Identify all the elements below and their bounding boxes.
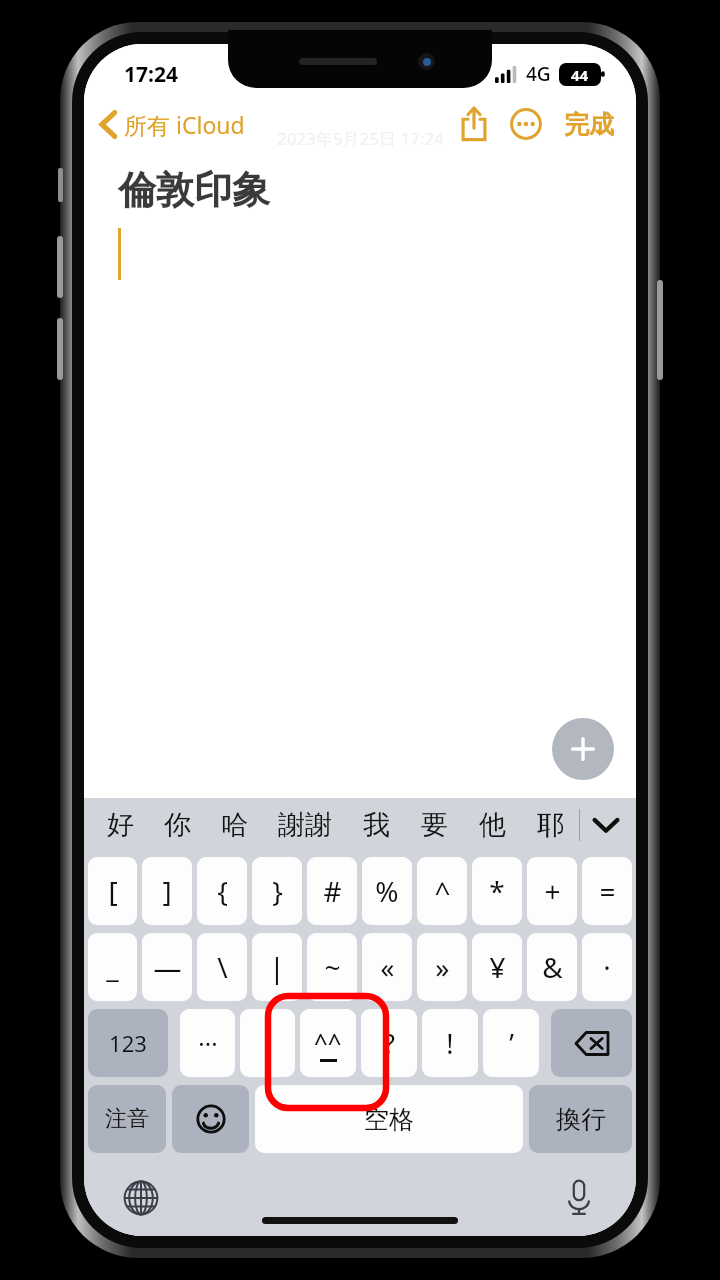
staticText: 完成 (564, 109, 614, 140)
button[interactable]: ’ (483, 1009, 539, 1077)
staticText: 2023年5月25日 17:24 (277, 127, 444, 150)
button[interactable]: 好 (92, 798, 149, 852)
button[interactable]: ¥ (472, 933, 522, 1001)
staticText: ¥ (489, 948, 506, 986)
staticText: = (599, 872, 616, 910)
button[interactable]: 完成 (552, 101, 626, 148)
button[interactable]: _ (88, 933, 137, 1001)
button[interactable]: # (307, 857, 357, 925)
staticText: * (489, 872, 505, 910)
button[interactable]: ··· (180, 1009, 235, 1077)
button[interactable]: * (472, 857, 522, 925)
staticText: 我 (363, 808, 390, 842)
staticText: 謝謝 (278, 808, 332, 842)
staticText: 倫敦印象 (118, 166, 270, 214)
button[interactable]: 謝謝 (263, 798, 347, 852)
button[interactable]: = (582, 857, 632, 925)
button[interactable]: % (362, 857, 412, 925)
button[interactable]: ^^ (300, 1009, 356, 1077)
staticText: ? (383, 1025, 395, 1062)
button[interactable]: More options (500, 98, 552, 150)
staticText: 17:24 (124, 60, 178, 89)
staticText: } (272, 872, 283, 910)
button[interactable]: Dictation (556, 1175, 602, 1221)
staticText: — (153, 948, 182, 986)
button[interactable]: 你 (149, 798, 206, 852)
staticText: ， (256, 1028, 280, 1058)
button[interactable]: 所有 iCloud (84, 103, 255, 146)
staticText: & (542, 948, 563, 986)
staticText: 你 (164, 808, 191, 842)
button[interactable]: Emoji (172, 1085, 249, 1153)
button[interactable]: · (582, 933, 632, 1001)
staticText: 要 (421, 808, 448, 842)
staticText: ^ (434, 872, 451, 910)
button[interactable]: + (527, 857, 577, 925)
button[interactable]: | (252, 933, 302, 1001)
staticText: { (217, 872, 228, 910)
button[interactable]: ^ (417, 857, 467, 925)
button[interactable]: » (417, 933, 467, 1001)
staticText: ··· (198, 1027, 218, 1060)
button[interactable]: } (252, 857, 302, 925)
staticText: ] (162, 872, 172, 910)
staticText: # (323, 872, 342, 910)
staticText: \ (217, 948, 228, 986)
staticText: | (269, 948, 285, 986)
staticText: « (380, 948, 395, 986)
button[interactable]: 123 (88, 1009, 168, 1077)
button[interactable]: — (142, 933, 192, 1001)
staticText: [ (108, 872, 118, 910)
button[interactable]: ] (142, 857, 192, 925)
staticText: ! (446, 1025, 454, 1062)
button[interactable]: 換行 (529, 1085, 632, 1153)
staticText: ~ (324, 948, 341, 986)
staticText: 換行 (556, 1104, 606, 1135)
button[interactable]: [ (88, 857, 137, 925)
button[interactable]: Change keyboard (118, 1175, 164, 1221)
staticText: 他 (479, 808, 506, 842)
staticText: + (544, 872, 561, 910)
button[interactable]: ! (422, 1009, 478, 1077)
staticText: 注音 (105, 1105, 149, 1133)
staticText: % (375, 872, 399, 910)
staticText: 耶 (537, 808, 564, 842)
button[interactable]: 要 (405, 798, 463, 852)
button[interactable]: ~ (307, 933, 357, 1001)
button[interactable]: Collapse suggestions (580, 798, 632, 852)
staticText: 123 (109, 1028, 147, 1058)
button[interactable]: Share (448, 98, 500, 150)
button[interactable]: ， (240, 1009, 295, 1077)
button[interactable]: & (527, 933, 577, 1001)
staticText: · (603, 948, 611, 986)
button[interactable]: \ (197, 933, 247, 1001)
staticText: _ (106, 948, 119, 986)
button[interactable]: 我 (347, 798, 405, 852)
button[interactable]: 注音 (88, 1085, 166, 1153)
staticText: 所有 iCloud (124, 109, 245, 140)
button[interactable]: 耶 (521, 798, 579, 852)
staticText: 4G (526, 61, 551, 87)
staticText: 好 (107, 808, 134, 842)
button[interactable]: Backspace (551, 1009, 632, 1077)
staticText: ’ (509, 1025, 514, 1062)
button[interactable]: ? (361, 1009, 417, 1077)
staticText: 44 (571, 65, 589, 85)
button[interactable]: 空格 (255, 1085, 523, 1153)
button[interactable]: « (362, 933, 412, 1001)
button[interactable]: { (197, 857, 247, 925)
button[interactable]: Add attachment (552, 718, 614, 780)
staticText: 空格 (364, 1104, 414, 1135)
staticText: » (435, 948, 450, 986)
button[interactable]: 哈 (206, 798, 263, 852)
staticText: 哈 (221, 808, 248, 842)
button[interactable]: 他 (463, 798, 521, 852)
staticText: ^^ (314, 1025, 342, 1058)
